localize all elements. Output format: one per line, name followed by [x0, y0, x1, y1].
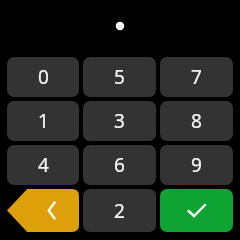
staticText: 8 — [191, 108, 202, 134]
staticText: 4 — [38, 152, 49, 178]
button[interactable]: 6 — [83, 145, 156, 185]
staticText: 7 — [191, 64, 202, 90]
button[interactable]: 9 — [160, 145, 233, 185]
staticText: 9 — [191, 152, 202, 178]
button[interactable]: 8 — [160, 101, 233, 141]
staticText: 0 — [38, 64, 49, 90]
button[interactable]: 2 — [83, 189, 156, 232]
button[interactable]: Delete — [7, 189, 79, 232]
button[interactable]: Confirm — [160, 189, 233, 232]
staticText: 6 — [114, 152, 125, 178]
staticText: 1 — [38, 108, 49, 134]
button[interactable]: 4 — [7, 145, 79, 185]
button[interactable]: 7 — [160, 57, 233, 97]
staticText: 5 — [114, 64, 125, 90]
staticText: 3 — [114, 108, 125, 134]
button[interactable]: 3 — [83, 101, 156, 141]
button[interactable]: 1 — [7, 101, 79, 141]
button[interactable]: 5 — [83, 57, 156, 97]
button[interactable]: 0 — [7, 57, 79, 97]
staticText: 2 — [114, 198, 125, 224]
